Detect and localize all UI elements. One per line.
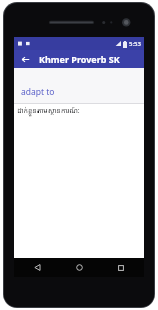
staticText: adapt to (21, 86, 55, 98)
staticText: ដាក់ខ្លួនតាមស្ថានការណ៍: (17, 106, 80, 116)
button[interactable]: adapt to (14, 68, 144, 103)
staticText: Khmer Proverb SK (39, 53, 120, 65)
staticText: 5:53 (129, 40, 141, 48)
button[interactable]: Home (66, 258, 92, 277)
button[interactable]: Navigate up (17, 51, 33, 67)
button[interactable]: Recent apps (108, 258, 134, 277)
button[interactable]: Back (24, 258, 50, 277)
button[interactable]: ដាក់ខ្លួនតាមស្ថានការណ៍: (14, 104, 144, 118)
